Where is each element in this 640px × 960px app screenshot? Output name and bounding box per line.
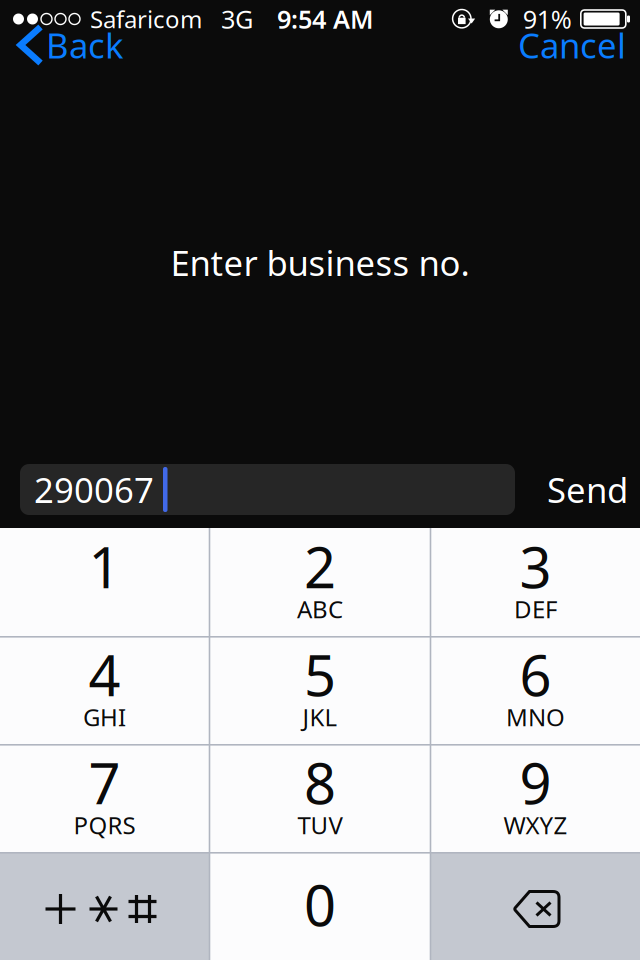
staticText: 7 xyxy=(88,745,120,820)
staticText: 91% xyxy=(523,2,572,36)
staticText: ABC xyxy=(297,593,343,625)
button[interactable]: 3 xyxy=(431,528,640,636)
staticText: DEF xyxy=(514,593,557,625)
button[interactable]: Symbols xyxy=(0,852,209,960)
staticText: 8 xyxy=(304,745,336,820)
button[interactable]: Delete xyxy=(431,852,640,960)
staticText: 5 xyxy=(304,637,336,712)
button[interactable]: 9 xyxy=(431,744,640,852)
staticText: WXYZ xyxy=(503,809,567,841)
staticText: Send xyxy=(547,466,628,512)
staticText: 9:54 AM xyxy=(277,2,374,36)
staticText: PQRS xyxy=(73,809,135,841)
staticText: GHI xyxy=(83,701,126,733)
button[interactable]: 7 xyxy=(0,744,209,852)
button[interactable]: 8 xyxy=(209,744,431,852)
staticText: Cancel xyxy=(518,22,626,68)
button[interactable]: 1 xyxy=(0,528,209,636)
button[interactable]: Send xyxy=(535,464,640,515)
staticText: 3G xyxy=(221,2,253,36)
button[interactable]: 6 xyxy=(431,636,640,744)
staticText: 290067 xyxy=(34,466,154,512)
button[interactable]: Cancel xyxy=(500,23,640,67)
staticText: Enter business no. xyxy=(170,239,469,285)
button[interactable]: 0 xyxy=(209,852,431,960)
button[interactable]: 5 xyxy=(209,636,431,744)
button[interactable]: 2 xyxy=(209,528,431,636)
staticText: 4 xyxy=(88,637,120,712)
staticText: Back xyxy=(46,22,124,68)
staticText: 2 xyxy=(304,529,336,604)
staticText: 6 xyxy=(519,637,551,712)
staticText: 3 xyxy=(519,529,551,604)
staticText: 9 xyxy=(519,745,551,820)
staticText: TUV xyxy=(297,809,342,841)
staticText: 1 xyxy=(88,529,120,604)
staticText: JKL xyxy=(302,701,337,733)
button[interactable]: 4 xyxy=(0,636,209,744)
button[interactable]: Back xyxy=(0,23,136,67)
staticText: Safaricom xyxy=(90,3,202,35)
staticText: 0 xyxy=(304,867,336,942)
staticText: MNO xyxy=(506,701,565,733)
